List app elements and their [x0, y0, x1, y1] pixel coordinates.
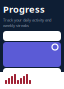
staticText: Track your daily activity and weekly str…	[3, 17, 51, 28]
staticText: Progress	[3, 3, 45, 15]
